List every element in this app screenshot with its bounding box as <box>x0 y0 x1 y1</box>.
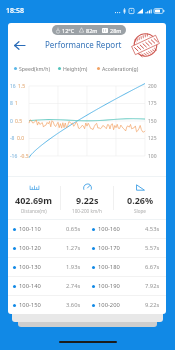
staticText: -8 <box>10 135 15 142</box>
button[interactable]: 100-200 <box>87 296 166 314</box>
button[interactable]: 100-190 <box>87 277 166 295</box>
staticText: 402.69m <box>15 194 53 206</box>
button[interactable]: 100-170 <box>87 239 166 257</box>
staticText: 100 <box>148 153 157 160</box>
staticText: 100-180 <box>98 263 120 271</box>
staticText: 12°C <box>62 27 75 34</box>
staticText: 2.74s <box>66 282 81 290</box>
staticText: Height(m) <box>63 65 88 72</box>
staticText: Speed(km/h) <box>19 65 50 72</box>
staticText: 1.5 <box>18 83 26 90</box>
staticText: 6.67s <box>145 263 160 271</box>
staticText: 0.65s <box>66 225 81 233</box>
staticText: 100-170 <box>98 244 120 252</box>
button[interactable]: 100-160 <box>87 220 166 238</box>
staticText: -16 <box>10 153 18 160</box>
staticText: 1 <box>15 100 18 107</box>
staticText: Distance(m) <box>21 208 47 214</box>
button[interactable]: 100-110 <box>8 220 87 238</box>
button[interactable]: 9.22s <box>61 177 113 219</box>
staticText: 125 <box>148 135 157 142</box>
staticText: 28m <box>110 27 122 34</box>
staticText: 100-130 <box>19 263 41 271</box>
button[interactable]: 100-130 <box>8 258 87 276</box>
staticText: 18:58 <box>6 6 24 16</box>
staticText: 100-110 <box>19 225 41 233</box>
staticText: 0.5 <box>15 118 23 125</box>
staticText: 8 <box>10 100 13 107</box>
staticText: 100-150 <box>19 301 41 309</box>
button[interactable]: 100-140 <box>8 277 87 295</box>
staticText: 3.60s <box>66 301 81 309</box>
staticText: 9.22s <box>76 194 99 206</box>
staticText: 7.92s <box>145 282 160 290</box>
staticText: 1.27s <box>66 244 81 252</box>
staticText: 100-200 <box>98 301 120 309</box>
button[interactable]: 0.26% <box>114 177 166 219</box>
staticText: 175 <box>148 100 157 107</box>
staticText: 9.22s <box>145 301 160 309</box>
button[interactable]: 100-120 <box>8 239 87 257</box>
staticText: 4.53s <box>145 225 160 233</box>
staticText: 100-200 km/h <box>72 208 102 214</box>
staticText: 16 <box>10 83 16 90</box>
staticText: 100-120 <box>19 244 41 252</box>
staticText: 5.57s <box>145 244 160 252</box>
staticText: Acceleration(g) <box>102 65 139 72</box>
staticText: 1.93s <box>66 263 81 271</box>
staticText: 150 <box>148 118 157 125</box>
staticText: Slope <box>134 208 146 214</box>
staticText: 0 <box>10 118 13 125</box>
button[interactable]: Back <box>9 35 29 55</box>
button[interactable]: 100-150 <box>8 296 87 314</box>
staticText: 0.0 <box>17 135 25 142</box>
staticText: Performance Report <box>45 39 122 50</box>
staticText: 100-190 <box>98 282 120 290</box>
staticText: 82m <box>86 27 98 34</box>
staticText: -0.5 <box>20 153 29 160</box>
button[interactable]: 100-180 <box>87 258 166 276</box>
button[interactable]: 402.69m <box>8 177 60 219</box>
staticText: 100-160 <box>98 225 120 233</box>
staticText: 100-140 <box>19 282 41 290</box>
staticText: 200 <box>148 83 157 90</box>
staticText: 0.26% <box>127 194 154 206</box>
